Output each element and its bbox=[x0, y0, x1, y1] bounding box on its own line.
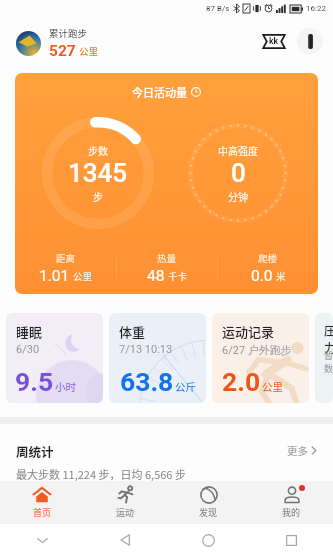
button[interactable]: Back bbox=[84, 524, 167, 556]
staticText: 周统计 bbox=[16, 442, 54, 460]
staticText: 距离 bbox=[56, 251, 76, 265]
button[interactable]: 运动记录 bbox=[212, 313, 309, 403]
staticText: 累计跑步 bbox=[49, 26, 88, 40]
staticText: 体重 bbox=[119, 322, 146, 341]
button[interactable]: 今日活动量 bbox=[15, 73, 318, 294]
staticText: 最大步数 11,224 步，日均 6,566 步 bbox=[16, 466, 186, 481]
button[interactable]: Recent apps bbox=[250, 524, 333, 556]
staticText: 小时 bbox=[55, 379, 76, 394]
staticText: 63.8 bbox=[120, 366, 174, 397]
staticText: 米 bbox=[276, 269, 286, 283]
staticText: 首页 bbox=[33, 506, 52, 519]
staticText: 今日活动量 bbox=[132, 84, 187, 100]
staticText: 更多 bbox=[287, 443, 308, 458]
button[interactable]: 我的 bbox=[250, 481, 333, 524]
staticText: 睡眠 bbox=[16, 322, 43, 341]
staticText: 运动 bbox=[116, 506, 135, 519]
button[interactable]: 距离 bbox=[15, 242, 116, 294]
staticText: 公里 bbox=[79, 44, 99, 58]
staticText: 步 bbox=[93, 189, 103, 203]
button[interactable]: 热量 bbox=[117, 242, 217, 294]
staticText: 1.01 bbox=[39, 267, 70, 285]
staticText: 公里 bbox=[73, 269, 93, 283]
staticText: 中高强度 bbox=[218, 143, 258, 157]
staticText: 数据 bbox=[324, 362, 333, 375]
staticText: 9.5 bbox=[15, 366, 54, 397]
staticText: 527 bbox=[49, 42, 76, 60]
staticText: 公里 bbox=[262, 379, 283, 394]
staticText: 0.0 bbox=[251, 267, 273, 285]
staticText: 步数 bbox=[88, 143, 108, 157]
button[interactable]: My device bbox=[297, 28, 323, 54]
staticText: 87 B/s bbox=[206, 4, 230, 13]
staticText: 16:22 bbox=[306, 4, 326, 13]
staticText: 压力 bbox=[324, 322, 333, 356]
staticText: 1345 bbox=[68, 158, 128, 188]
button[interactable]: 发现 bbox=[167, 481, 250, 524]
button[interactable]: 体重 bbox=[109, 313, 206, 403]
button[interactable]: 运动 bbox=[84, 481, 167, 524]
button[interactable]: 首页 bbox=[0, 481, 84, 524]
staticText: 6/30 bbox=[16, 343, 40, 356]
staticText: 爬楼 bbox=[258, 251, 278, 265]
staticText: 公斤 bbox=[175, 379, 196, 394]
button[interactable]: 睡眠 bbox=[6, 313, 103, 403]
button[interactable]: Hide navigation bar bbox=[0, 524, 84, 556]
staticText: 千卡 bbox=[168, 269, 188, 283]
staticText: 分钟 bbox=[228, 189, 248, 203]
staticText: 运动记录 bbox=[222, 322, 275, 341]
button[interactable]: Profile avatar bbox=[16, 31, 41, 56]
button[interactable]: 压力 bbox=[315, 313, 333, 403]
staticText: 0 bbox=[231, 158, 246, 188]
staticText: 暂无 bbox=[324, 349, 333, 362]
staticText: kk bbox=[269, 36, 279, 46]
staticText: 我的 bbox=[282, 506, 301, 519]
button[interactable]: Home bbox=[167, 524, 250, 556]
staticText: 热量 bbox=[157, 251, 177, 265]
button[interactable]: 更多 bbox=[283, 440, 321, 461]
staticText: 2.0 bbox=[222, 366, 261, 397]
button[interactable]: 爬楼 bbox=[218, 242, 318, 294]
staticText: 48 bbox=[147, 267, 165, 285]
staticText: 7/13 10:13 bbox=[119, 343, 173, 356]
button[interactable]: KK coupons bbox=[257, 24, 291, 58]
staticText: 6/27 户外跑步 bbox=[222, 343, 292, 357]
staticText: 发现 bbox=[199, 506, 218, 519]
